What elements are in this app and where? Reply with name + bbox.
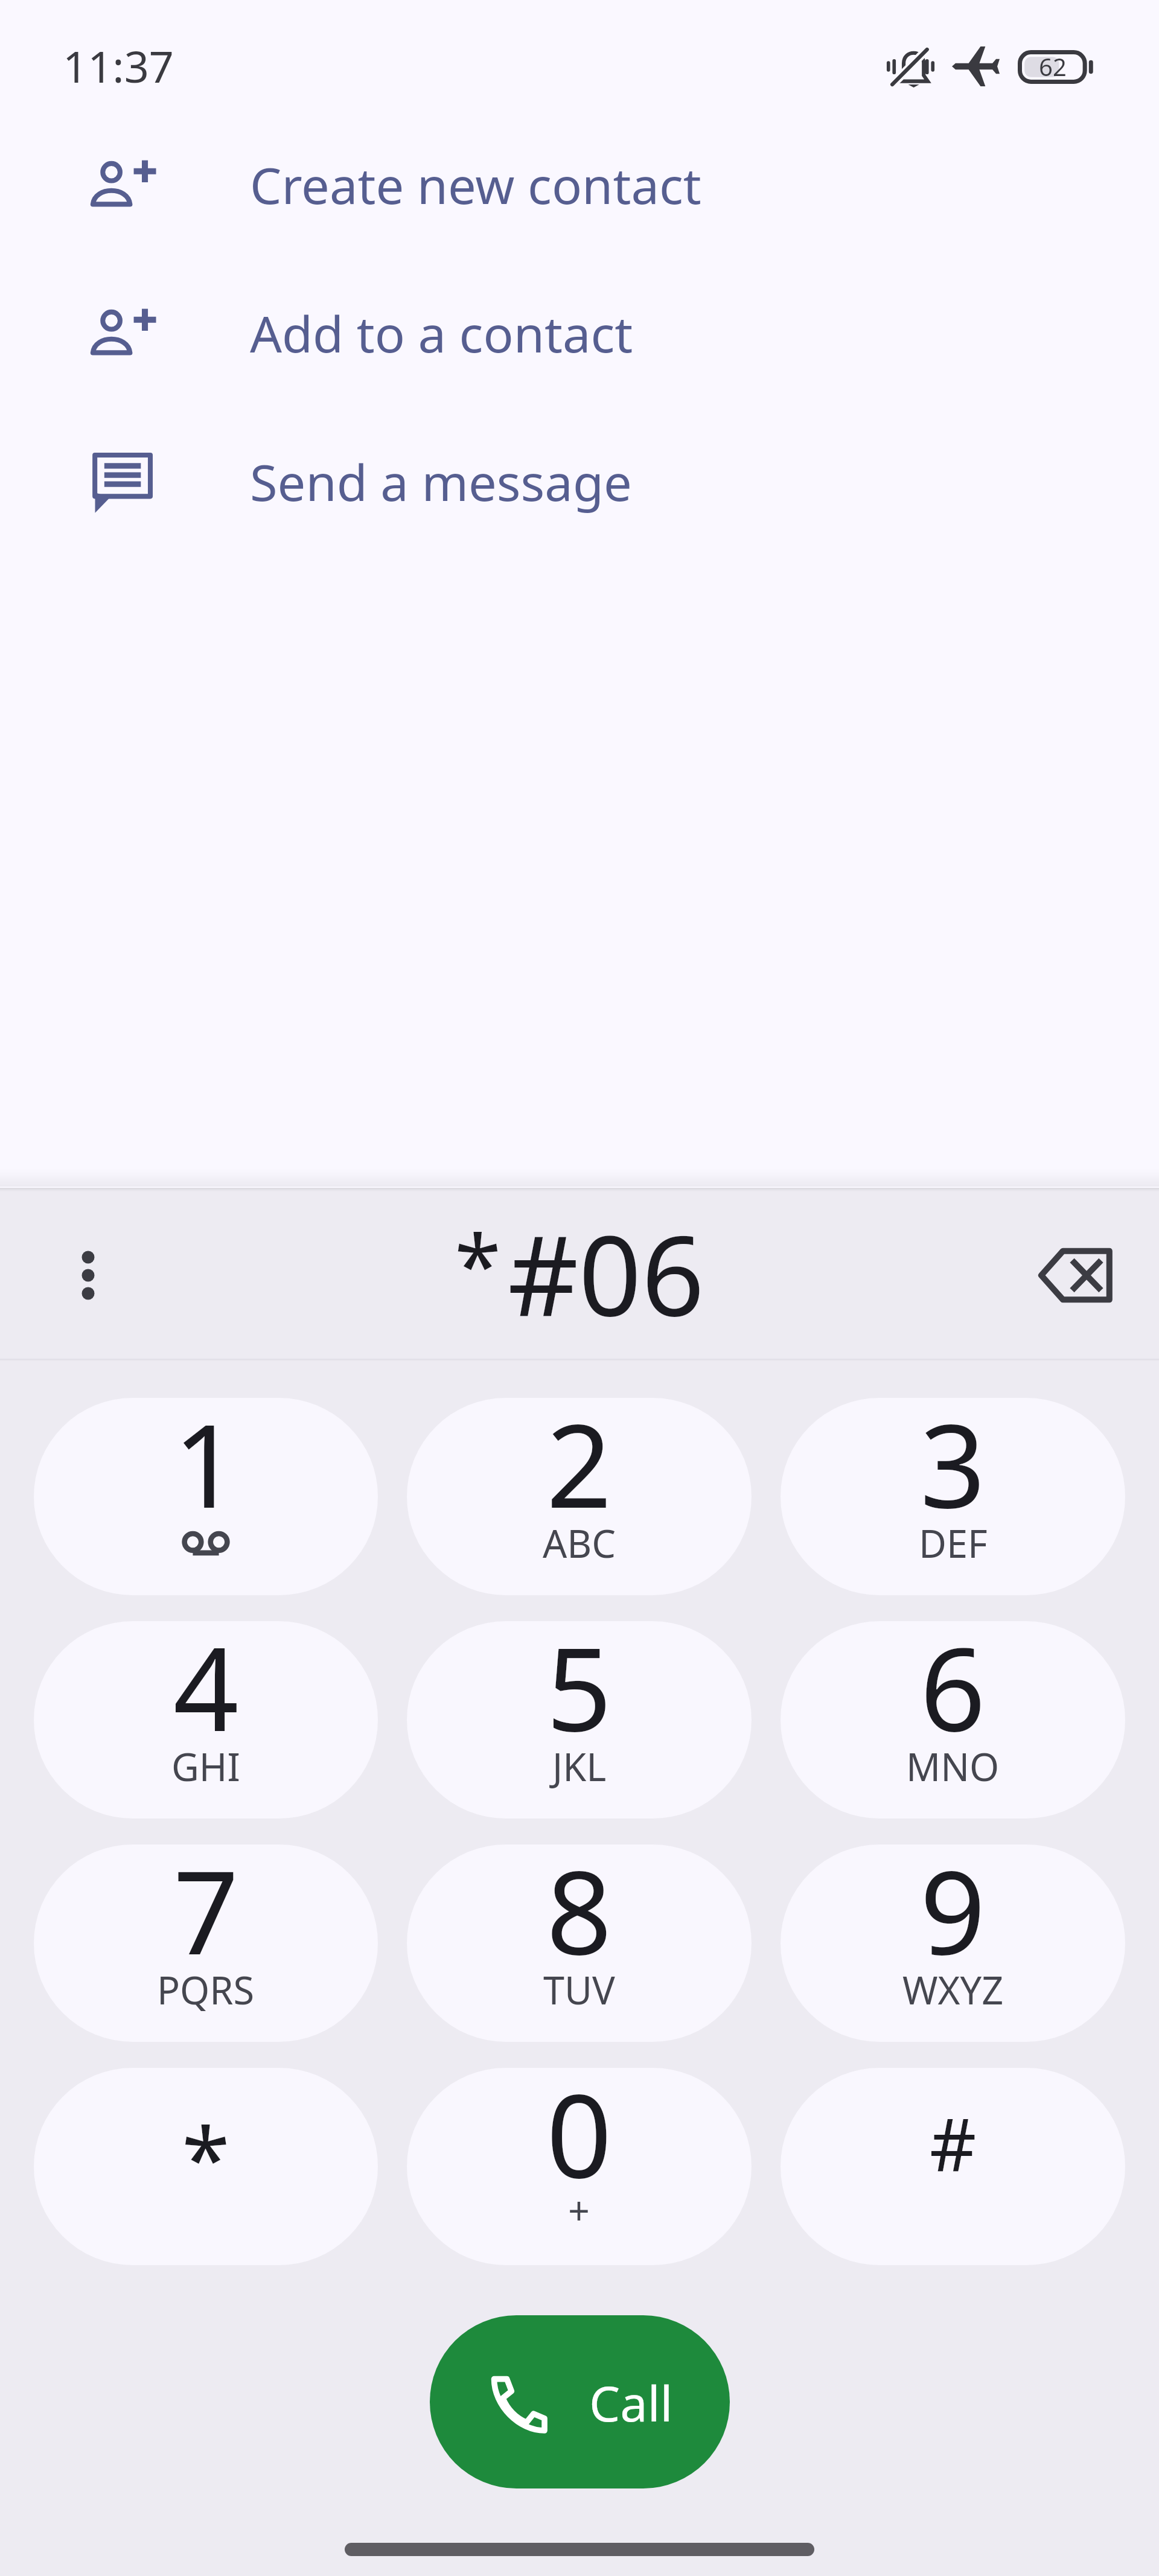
button[interactable]: 1 (34, 1398, 378, 1595)
staticText: 0 (546, 2068, 612, 2211)
button[interactable]: 5 (407, 1621, 752, 1819)
staticText: WXYZ (902, 1964, 1004, 2016)
button[interactable]: Send a message (0, 407, 1159, 555)
button[interactable]: # (781, 2068, 1125, 2265)
button[interactable]: More options (58, 1245, 118, 1306)
staticText: 62 (1039, 50, 1067, 83)
button[interactable]: 2 (407, 1398, 752, 1595)
staticText: 11:37 (63, 36, 174, 95)
staticText: 2 (546, 1398, 612, 1541)
staticText: TUV (543, 1964, 615, 2016)
staticText: Create new contact (250, 150, 701, 218)
staticText: * (182, 2097, 230, 2216)
staticText: 6 (920, 1621, 986, 1765)
staticText: DEF (919, 1517, 988, 1569)
staticText: # (930, 2094, 977, 2192)
button[interactable]: 8 (407, 1844, 752, 2042)
staticText: Add to a contact (250, 299, 633, 367)
staticText: Send a message (250, 447, 632, 515)
other: Airplane mode (952, 46, 1000, 86)
other: Silent mode (887, 47, 934, 88)
button[interactable]: Add to a contact (0, 258, 1159, 407)
staticText: * (455, 1206, 502, 1321)
button[interactable]: * (34, 2068, 378, 2265)
button[interactable]: Create new contact (0, 110, 1159, 258)
staticText: 7 (173, 1844, 239, 1988)
staticText: Call (589, 2369, 673, 2435)
staticText: + (568, 2184, 590, 2236)
staticText: GHI (171, 1741, 240, 1793)
staticText: 3 (920, 1398, 986, 1541)
button[interactable]: Call (430, 2315, 730, 2488)
button[interactable]: 0 (407, 2068, 752, 2265)
staticText: 8 (546, 1844, 612, 1988)
button[interactable]: 7 (34, 1844, 378, 2042)
staticText: 9 (920, 1844, 986, 1988)
staticText: ABC (543, 1517, 616, 1569)
staticText: 5 (546, 1621, 612, 1765)
staticText: JKL (552, 1741, 607, 1793)
staticText: 1 (173, 1398, 239, 1541)
button[interactable]: 6 (781, 1621, 1125, 1819)
staticText: MNO (906, 1741, 1000, 1793)
button[interactable]: Backspace (1036, 1235, 1116, 1315)
button[interactable]: 9 (781, 1844, 1125, 2042)
staticText: 4 (173, 1621, 239, 1765)
staticText: PQRS (157, 1964, 255, 2016)
staticText: #06 (508, 1198, 704, 1348)
button[interactable]: 4 (34, 1621, 378, 1819)
button[interactable]: 3 (781, 1398, 1125, 1595)
